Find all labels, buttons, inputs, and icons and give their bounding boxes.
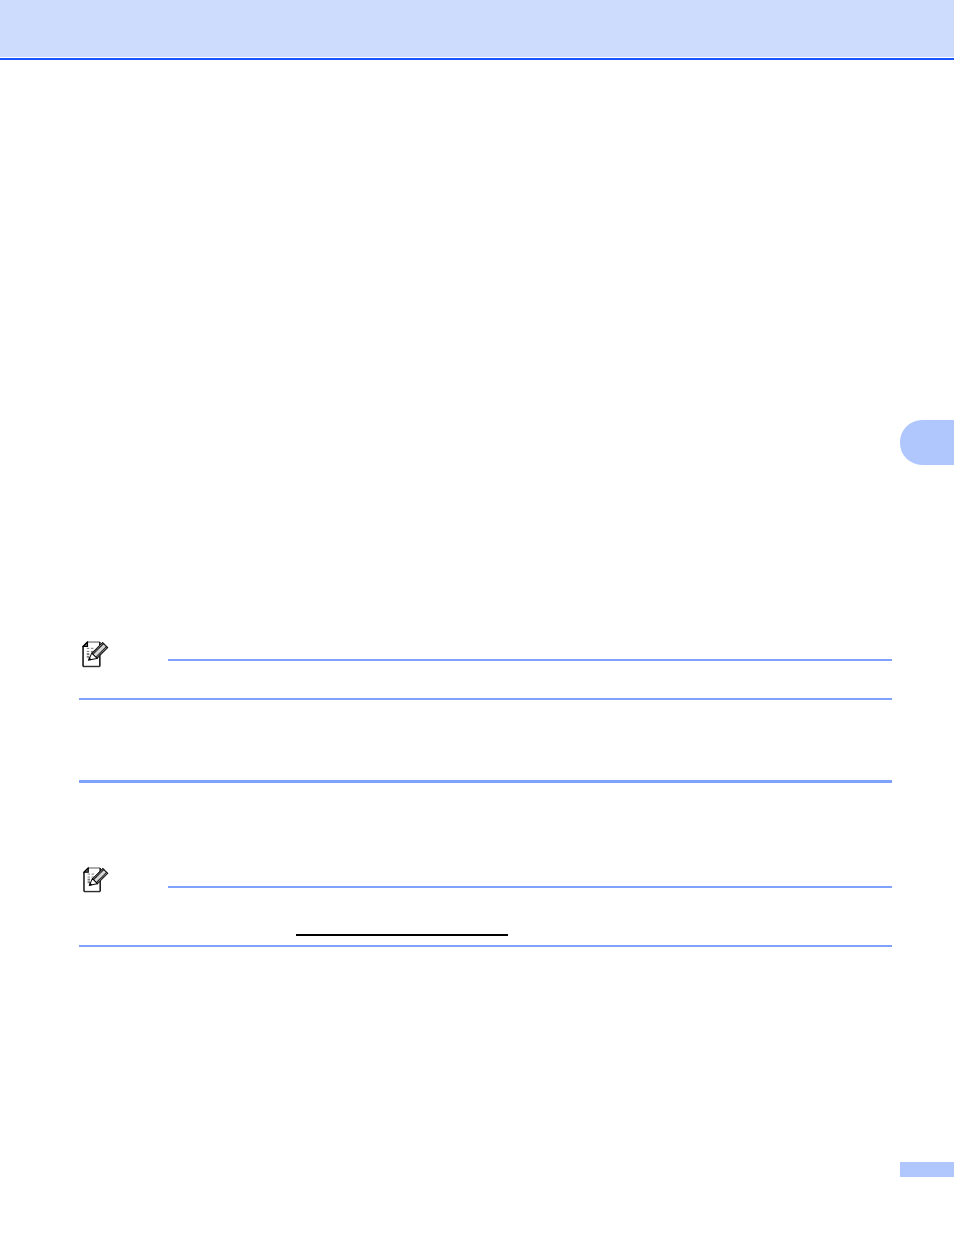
other: Note: [82, 867, 109, 894]
button[interactable]: Note callout one: [79, 633, 892, 677]
button[interactable]: Chapter tab: [900, 420, 954, 465]
other: Note: [81, 641, 109, 669]
button[interactable]: Note callout two: [79, 859, 892, 903]
